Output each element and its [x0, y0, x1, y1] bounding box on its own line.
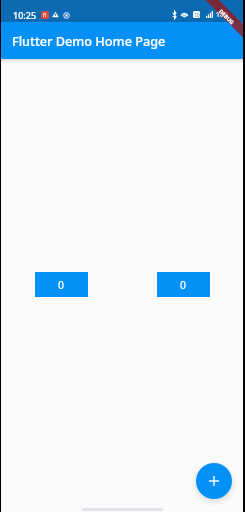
- staticText: fl: [43, 12, 47, 19]
- staticText: 1D: [194, 12, 200, 18]
- staticText: 100: [216, 10, 229, 20]
- staticText: 10:25: [13, 9, 37, 21]
- staticText: DEBUG: [218, 7, 236, 26]
- staticText: Flutter Demo Home Page: [12, 32, 166, 49]
- button[interactable]: 0: [157, 272, 210, 297]
- staticText: 0: [180, 278, 187, 292]
- button[interactable]: 0: [35, 272, 88, 297]
- staticText: 0: [58, 278, 65, 292]
- button[interactable]: Increment: [196, 463, 232, 499]
